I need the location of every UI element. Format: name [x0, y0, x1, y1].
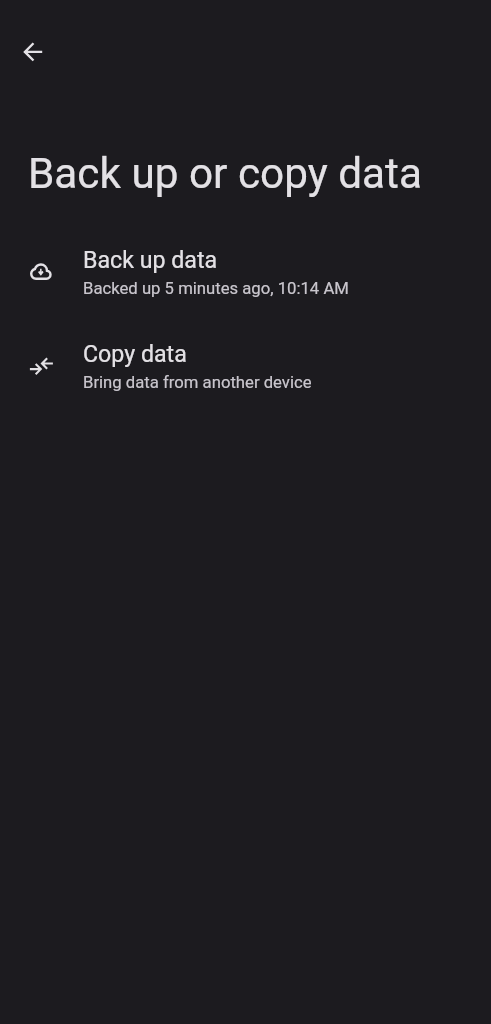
- staticText: Back up data: [83, 246, 218, 273]
- button[interactable]: Back up data: [0, 225, 491, 319]
- button[interactable]: Navigate up: [5, 24, 61, 80]
- staticText: Bring data from another device: [83, 373, 312, 393]
- staticText: Back up or copy data: [28, 149, 422, 199]
- staticText: Backed up 5 minutes ago, 10:14 AM: [83, 279, 349, 299]
- staticText: Copy data: [83, 340, 187, 367]
- button[interactable]: Copy data: [0, 319, 491, 413]
